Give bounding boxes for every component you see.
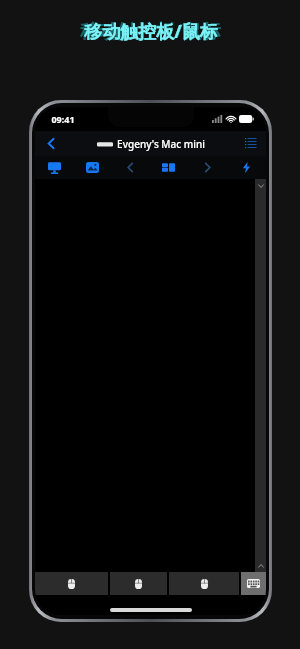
button[interactable]: Scroll up [255, 559, 266, 572]
button[interactable]: Next [188, 156, 227, 179]
button[interactable]: Screenshot [73, 156, 111, 179]
button[interactable]: Left click [35, 572, 108, 595]
staticText: Evgeny's Mac mini [117, 137, 205, 151]
staticText: 09:41 [51, 113, 75, 125]
button[interactable]: Scroll down [255, 179, 266, 192]
button[interactable]: Windows [149, 156, 188, 179]
button[interactable]: Right click [169, 572, 239, 595]
staticText: 移动触控板/鼠标 [80, 18, 221, 44]
button[interactable]: Back [35, 131, 67, 156]
button[interactable]: Display [35, 156, 73, 179]
button[interactable]: Middle click [110, 572, 167, 595]
button[interactable]: Previous [111, 156, 149, 179]
button[interactable]: Quick actions [227, 156, 266, 179]
button[interactable]: Keyboard [241, 572, 266, 595]
button[interactable]: List [236, 131, 266, 156]
staticText: 移动触控板/鼠标 [84, 19, 218, 44]
